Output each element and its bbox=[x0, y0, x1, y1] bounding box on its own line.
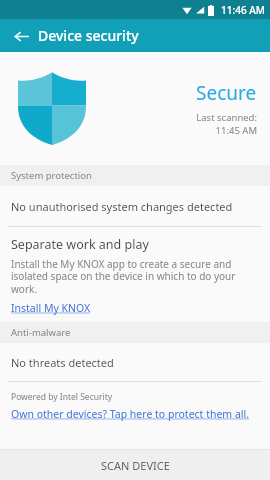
staticText: No threats detected bbox=[11, 355, 114, 370]
staticText: Last scanned: bbox=[196, 111, 257, 124]
staticText: No unauthorised system changes detected bbox=[11, 199, 233, 214]
staticText: Separate work and play bbox=[11, 236, 149, 253]
button[interactable]: Own other devices? Tap here to protect t… bbox=[11, 407, 250, 421]
staticText: Secure bbox=[196, 80, 257, 106]
staticText: Anti-malware bbox=[11, 326, 71, 339]
staticText: 11:45 AM bbox=[215, 124, 257, 137]
staticText: Install My KNOX bbox=[11, 301, 91, 315]
staticText: Install the My KNOX app to create a secu… bbox=[11, 257, 259, 296]
staticText: 11:46 AM bbox=[221, 3, 265, 17]
staticText: Device security bbox=[38, 26, 139, 45]
button[interactable]: Install My KNOX bbox=[11, 301, 91, 315]
button[interactable]: SCAN DEVICE bbox=[0, 450, 270, 480]
button[interactable]: Back bbox=[8, 23, 34, 49]
staticText: Powered by Intel Security bbox=[11, 391, 113, 403]
staticText: Own other devices? Tap here to protect t… bbox=[11, 407, 250, 421]
staticText: System protection bbox=[11, 169, 92, 182]
staticText: SCAN DEVICE bbox=[101, 458, 170, 473]
